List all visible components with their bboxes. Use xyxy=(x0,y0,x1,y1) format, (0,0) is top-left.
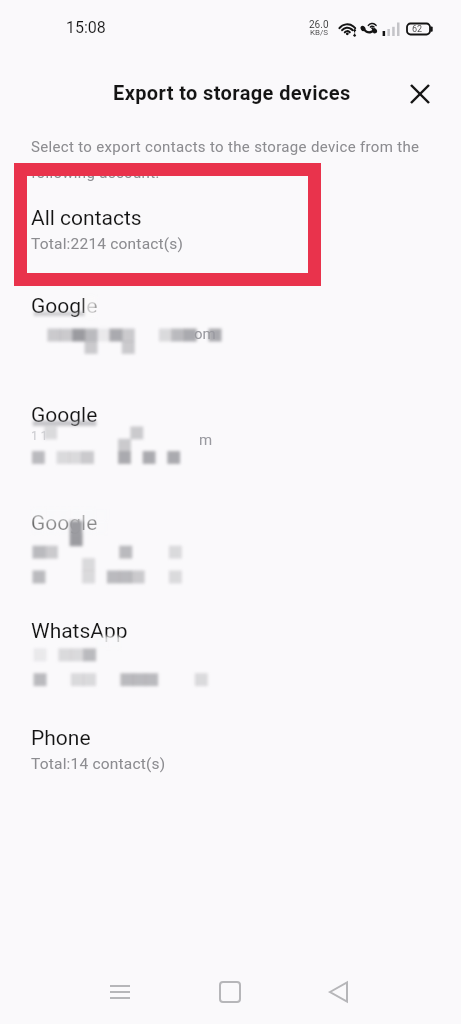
button[interactable]: Phone xyxy=(0,721,461,791)
staticText: om xyxy=(194,325,216,343)
staticText: 26.0 xyxy=(309,19,329,31)
staticText: Google xyxy=(31,403,98,428)
button[interactable]: Back xyxy=(316,968,364,1016)
staticText: Total:14 contact(s) xyxy=(31,755,166,773)
button[interactable]: Recents xyxy=(96,968,144,1016)
staticText: Google xyxy=(31,294,98,319)
staticText: Phone xyxy=(31,726,91,751)
staticText: m xyxy=(199,431,213,449)
staticText: KB/S xyxy=(310,28,329,37)
button[interactable]: WhatsApp xyxy=(0,614,461,714)
staticText: Google xyxy=(31,511,98,536)
staticText: WhatsApp xyxy=(31,619,128,644)
staticText: Total:2214 contact(s) xyxy=(31,235,184,253)
staticText: Select to export contacts to the storage… xyxy=(31,138,420,181)
staticText: All contacts xyxy=(31,206,142,231)
button[interactable]: All contacts xyxy=(0,201,461,271)
button[interactable]: Google xyxy=(0,289,461,389)
staticText: Export to storage devices xyxy=(113,81,351,104)
button[interactable]: Close xyxy=(406,80,434,108)
button[interactable]: Google xyxy=(0,398,461,498)
button[interactable]: Google xyxy=(0,506,461,606)
staticText: 1 1 xyxy=(31,429,48,443)
staticText: 15:08 xyxy=(66,18,106,37)
staticText: 62 xyxy=(412,24,423,35)
button[interactable]: Home xyxy=(206,968,254,1016)
